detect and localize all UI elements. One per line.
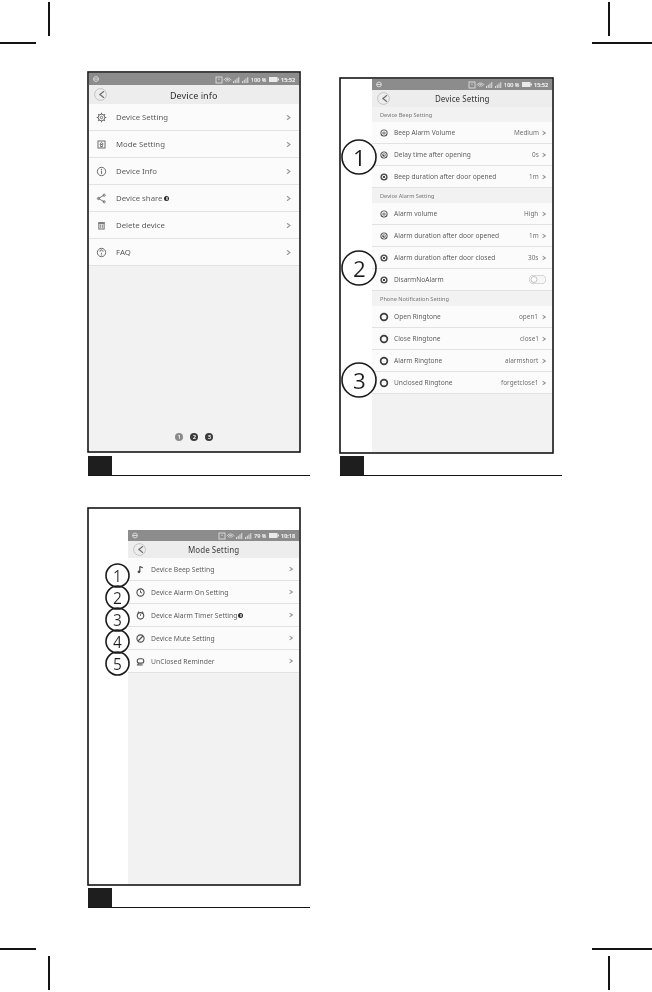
button[interactable]: 1 [175,433,183,441]
staticText: Device Beep Setting [380,111,433,119]
staticText: Device Mute Setting [151,634,215,643]
staticText: 3 [353,365,366,395]
staticText: 100 % [504,81,520,88]
staticText: Device info [170,89,218,101]
button[interactable]: Beep duration after door opened [372,166,552,188]
button[interactable]: Device Info [89,158,299,185]
staticText: 5 [113,653,122,674]
staticText: Delete device [116,220,165,231]
staticText: 15:52 [534,81,549,88]
staticText: 1 [353,142,366,172]
staticText: Device Alarm Timer Setting [151,611,238,620]
button[interactable]: 3 [205,433,213,441]
staticText: 2 [193,434,196,441]
staticText: Device Info [116,166,157,177]
button[interactable]: Device Alarm Timer Setting [128,604,299,627]
button[interactable]: Back [94,88,107,101]
staticText: forgetclose1 [501,378,539,387]
staticText: Beep duration after door opened [394,172,497,181]
staticText: 0 [166,196,168,201]
button[interactable]: Device Mute Setting [128,627,299,650]
staticText: 15:52 [281,76,296,83]
button[interactable]: 2 [190,433,198,441]
staticText: Unclosed Ringtone [394,378,453,387]
staticText: Mode Setting [188,544,240,555]
staticText: 79 % [254,532,267,539]
staticText: 2 [113,587,122,608]
staticText: 1 [178,434,181,441]
staticText: Open Ringtone [394,312,441,321]
staticText: alarmshort [505,356,539,365]
button[interactable]: Alarm Ringtone [372,350,552,372]
staticText: 4 [113,631,122,652]
button[interactable]: Beep Alarm Volume [372,122,552,144]
button[interactable]: DisarmNoAlarm [372,269,552,291]
staticText: Alarm duration after door closed [394,253,496,262]
staticText: UnClosed Reminder [151,657,215,666]
staticText: Delay time after opening [394,150,471,159]
button[interactable]: Device Setting [89,104,299,131]
staticText: FAQ [116,247,131,258]
button[interactable]: UnClosed Reminder [128,650,299,673]
button[interactable]: FAQ [89,239,299,266]
staticText: 30s [528,253,539,262]
button[interactable]: Alarm duration after door closed [372,247,552,269]
staticText: Medium [514,128,539,137]
staticText: DisarmNoAlarm [394,275,444,284]
staticText: Device share [116,193,163,204]
staticText: Close Ringtone [394,334,441,343]
staticText: Alarm volume [394,209,438,218]
staticText: Alarm duration after door opened [394,231,500,240]
staticText: 10:18 [281,532,296,539]
staticText: Device Beep Setting [151,565,215,574]
button[interactable]: Open Ringtone [372,306,552,328]
button[interactable]: Unclosed Ringtone [372,372,552,394]
button[interactable]: Device share [89,185,299,212]
staticText: Device Setting [435,93,490,104]
staticText: Device Alarm On Setting [151,588,229,597]
button[interactable]: Back [377,92,390,105]
button[interactable]: Device Alarm On Setting [128,581,299,604]
staticText: Beep Alarm Volume [394,128,456,137]
staticText: Device Alarm Setting [380,192,435,200]
staticText: 1 [113,565,122,586]
button[interactable]: Delete device [89,212,299,239]
staticText: 2 [353,253,366,283]
button[interactable]: Alarm volume [372,203,552,225]
staticText: 3 [113,609,122,630]
button[interactable]: Mode Setting [89,131,299,158]
staticText: open1 [519,312,539,321]
button[interactable]: Close Ringtone [372,328,552,350]
staticText: Device Setting [116,112,169,123]
staticText: 1m [529,172,539,181]
staticText: 1m [529,231,539,240]
staticText: High [524,209,539,218]
staticText: 100 % [251,76,267,83]
staticText: 0s [532,150,539,159]
staticText: Phone Notification Setting [380,295,449,303]
staticText: Alarm Ringtone [394,356,443,365]
staticText: 3 [208,434,211,441]
staticText: Mode Setting [116,139,165,150]
button[interactable]: Alarm duration after door opened [372,225,552,247]
staticText: close1 [520,334,539,343]
button[interactable]: Delay time after opening [372,144,552,166]
button[interactable]: Back [133,543,146,556]
staticText: 0 [240,614,242,618]
button[interactable]: Device Beep Setting [128,558,299,581]
